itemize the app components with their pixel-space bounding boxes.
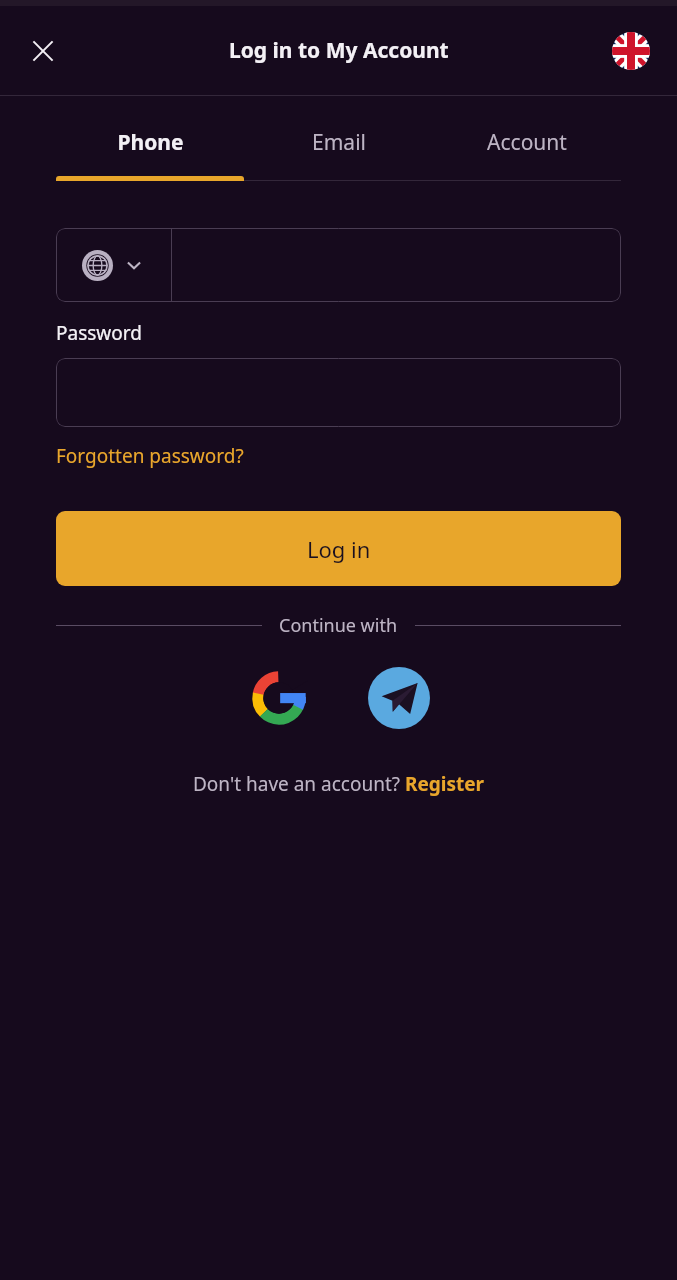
staticText: Don't have an account?: [193, 771, 405, 797]
button[interactable]: Log in: [56, 511, 621, 586]
staticText: Log in to My Account: [229, 36, 449, 65]
button[interactable]: Account: [433, 122, 621, 163]
staticText: Register: [405, 771, 485, 797]
staticText: Email: [312, 128, 366, 157]
button[interactable]: Email: [245, 122, 433, 163]
button[interactable]: Change language: [611, 31, 651, 71]
button[interactable]: Phone number: [172, 228, 621, 302]
staticText: Account: [487, 128, 567, 157]
button[interactable]: Register: [405, 771, 485, 797]
button[interactable]: Close: [20, 28, 66, 74]
button[interactable]: Continue with Google: [248, 667, 310, 729]
button[interactable]: Select country code: [56, 228, 171, 302]
staticText: Password: [56, 320, 142, 346]
staticText: Continue with: [279, 613, 398, 638]
button[interactable]: Phone: [56, 122, 245, 163]
button[interactable]: Password: [56, 358, 621, 427]
button[interactable]: Continue with Telegram: [368, 667, 430, 729]
staticText: Log in: [307, 534, 371, 564]
staticText: Phone: [117, 128, 184, 157]
staticText: Forgotten password?: [56, 443, 244, 469]
button[interactable]: Forgotten password?: [56, 443, 244, 469]
